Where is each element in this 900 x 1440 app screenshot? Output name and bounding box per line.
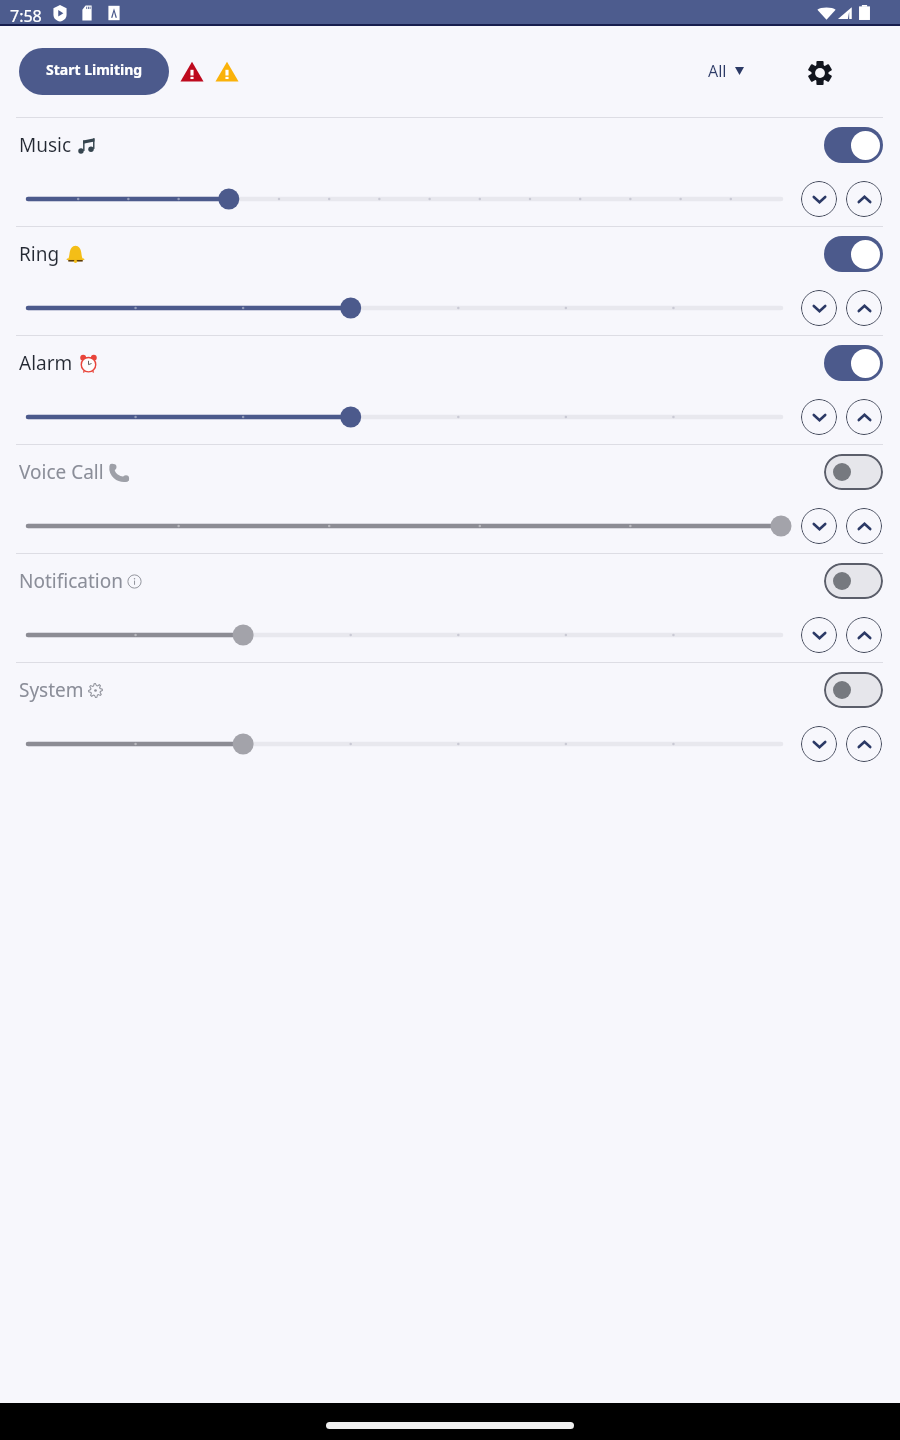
staticText: Notification — [19, 568, 123, 594]
staticText: 7:58 — [10, 5, 42, 27]
staticText: Alarm — [19, 350, 73, 376]
staticText: All — [708, 60, 727, 82]
button[interactable]: Increase Music — [846, 181, 882, 217]
button[interactable]: All — [698, 50, 754, 92]
button[interactable]: Increase Voice Call — [846, 508, 882, 544]
button[interactable]: Increase Notification — [846, 617, 882, 653]
staticText: Voice Call — [19, 459, 104, 485]
button[interactable]: Decrease Voice Call — [801, 508, 837, 544]
button[interactable]: Increase Ring — [846, 290, 882, 326]
button[interactable]: Decrease Ring — [801, 290, 837, 326]
button[interactable]: Settings — [796, 49, 844, 97]
button[interactable]: Decrease Notification — [801, 617, 837, 653]
button[interactable]: Toggle Notification — [824, 563, 883, 599]
button[interactable]: Toggle Alarm — [824, 345, 883, 381]
button[interactable]: Toggle Music — [824, 127, 883, 163]
button[interactable]: Decrease System — [801, 726, 837, 762]
staticText: Start Limiting — [46, 60, 143, 79]
button[interactable]: Decrease Alarm — [801, 399, 837, 435]
button[interactable]: Toggle Voice Call — [824, 454, 883, 490]
staticText: System — [19, 677, 84, 703]
button[interactable]: Decrease Music — [801, 181, 837, 217]
button[interactable]: Start Limiting — [19, 48, 169, 95]
staticText: Ring — [19, 241, 60, 267]
button[interactable]: Toggle System — [824, 672, 883, 708]
staticText: Music — [19, 132, 72, 158]
button[interactable]: Toggle Ring — [824, 236, 883, 272]
button[interactable]: Increase System — [846, 726, 882, 762]
button[interactable]: Increase Alarm — [846, 399, 882, 435]
